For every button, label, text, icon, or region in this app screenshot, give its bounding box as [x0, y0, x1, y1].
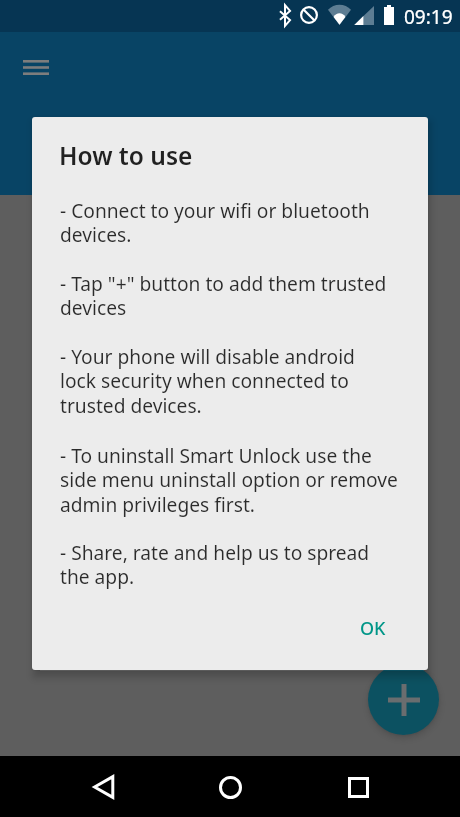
staticText: How to use [59, 139, 193, 172]
staticText: - Your phone will disable android lock s… [60, 343, 355, 419]
button[interactable]: Open navigation menu [12, 44, 60, 92]
staticText: - Share, rate and help us to spread the … [60, 539, 370, 590]
button[interactable]: Back [80, 764, 126, 810]
button[interactable]: Recent apps [335, 764, 381, 810]
button[interactable]: OK [340, 614, 406, 657]
staticText: OK [360, 616, 386, 641]
staticText: - Tap "+" button to add them trusted dev… [60, 270, 387, 321]
button[interactable]: Home [207, 764, 253, 810]
staticText: - To uninstall Smart Unlock use the side… [60, 442, 398, 518]
staticText: 09:19 [404, 4, 453, 30]
staticText: - Connect to your wifi or bluetooth devi… [60, 197, 370, 248]
button[interactable]: Add trusted device [368, 664, 439, 735]
